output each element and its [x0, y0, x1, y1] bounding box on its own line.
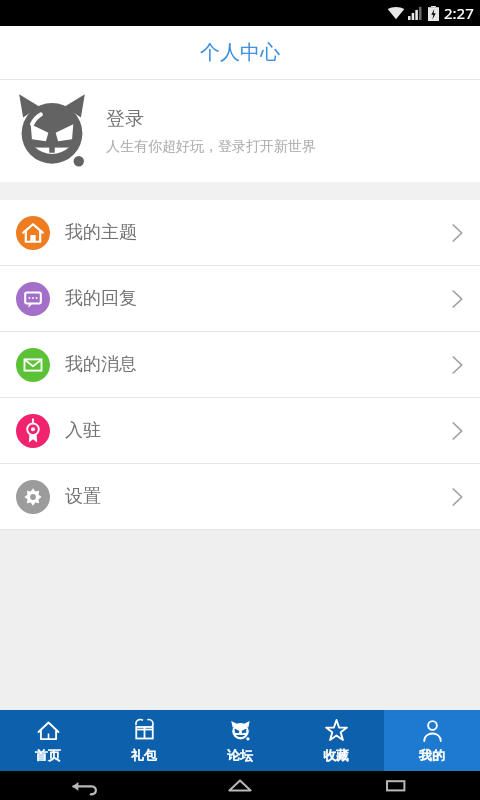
button[interactable]: 礼包 [96, 710, 192, 771]
button[interactable]: 首页 [0, 710, 96, 771]
button[interactable]: Back [70, 776, 98, 796]
button[interactable]: Recents [382, 776, 410, 796]
staticText: 我的回复 [65, 287, 137, 310]
staticText: 个人中心 [200, 40, 280, 65]
staticText: 我的消息 [65, 353, 137, 376]
staticText: 我的 [419, 747, 445, 763]
staticText: 人生有你超好玩，登录打开新世界 [106, 138, 316, 156]
staticText: 入驻 [65, 419, 101, 442]
staticText: 收藏 [323, 747, 349, 763]
button[interactable]: 我的 [384, 710, 480, 771]
staticText: 设置 [65, 485, 101, 508]
button[interactable]: 我的回复 [0, 266, 480, 331]
button[interactable]: 入驻 [0, 398, 480, 463]
staticText: 首页 [35, 747, 61, 763]
button[interactable]: 登录 [0, 80, 480, 182]
button[interactable]: 论坛 [192, 710, 288, 771]
staticText: 登录 [106, 107, 144, 131]
button[interactable]: 设置 [0, 464, 480, 529]
button[interactable]: 我的主题 [0, 200, 480, 265]
staticText: 2:27 [444, 3, 474, 23]
button[interactable]: 收藏 [288, 710, 384, 771]
button[interactable]: Home [226, 776, 254, 796]
staticText: 论坛 [227, 747, 253, 763]
button[interactable]: 我的消息 [0, 332, 480, 397]
staticText: 我的主题 [65, 221, 137, 244]
staticText: 礼包 [131, 747, 157, 763]
